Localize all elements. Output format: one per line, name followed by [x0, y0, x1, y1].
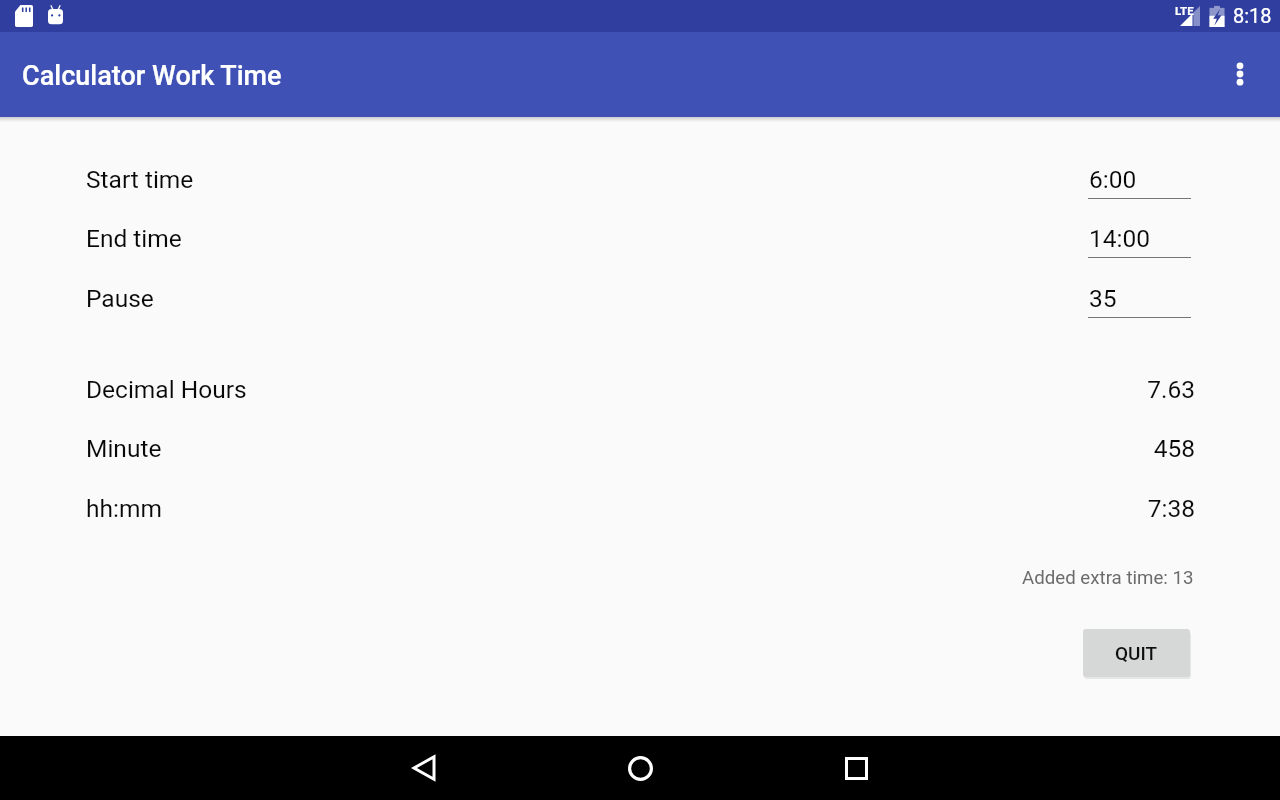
staticText: Minute — [86, 434, 162, 463]
staticText: Pause — [86, 284, 154, 313]
staticText: Added extra time: 13 — [1022, 567, 1194, 589]
staticText: 35 — [1089, 284, 1117, 313]
button[interactable]: 14:00 — [1088, 224, 1191, 258]
button[interactable]: Recent apps — [824, 736, 888, 800]
staticText: 8:18 — [1233, 4, 1272, 27]
button[interactable]: Back — [392, 736, 456, 800]
staticText: 7.63 — [990, 375, 1195, 404]
staticText: LTE — [1175, 4, 1194, 17]
staticText: Calculator Work Time — [22, 60, 282, 92]
staticText: 458 — [990, 434, 1195, 463]
button[interactable]: 6:00 — [1088, 165, 1191, 199]
button[interactable]: QUIT — [1083, 629, 1190, 677]
staticText: Decimal Hours — [86, 375, 247, 404]
button[interactable]: More options — [1216, 50, 1264, 98]
staticText: 6:00 — [1089, 165, 1137, 194]
staticText: 7:38 — [990, 494, 1195, 523]
staticText: hh:mm — [86, 494, 162, 523]
staticText: End time — [86, 224, 182, 253]
staticText: Start time — [86, 165, 194, 194]
staticText: QUIT — [1115, 642, 1158, 664]
button[interactable]: Home — [608, 736, 672, 800]
button[interactable]: 35 — [1088, 284, 1191, 318]
staticText: 14:00 — [1089, 224, 1151, 253]
